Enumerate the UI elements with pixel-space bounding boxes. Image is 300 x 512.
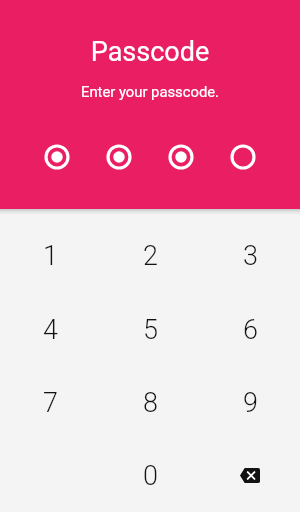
button[interactable]: 6 (200, 293, 300, 366)
staticText: 9 (243, 387, 258, 419)
staticText: 5 (143, 314, 158, 346)
button[interactable]: 5 (100, 293, 200, 366)
staticText: 0 (143, 460, 158, 492)
staticText: Enter your passcode. (0, 83, 300, 100)
staticText: Passcode (0, 36, 300, 68)
button[interactable]: 7 (0, 366, 100, 439)
staticText: 1 (43, 240, 58, 272)
staticText: 2 (143, 240, 158, 272)
staticText: 7 (43, 387, 58, 419)
button[interactable]: Delete (200, 439, 300, 512)
button[interactable]: 1 (0, 219, 100, 293)
button[interactable]: 2 (100, 219, 200, 293)
staticText: 8 (143, 387, 158, 419)
staticText: 6 (243, 314, 258, 346)
button[interactable]: 8 (100, 366, 200, 439)
button[interactable]: 4 (0, 293, 100, 366)
button[interactable]: 3 (200, 219, 300, 293)
staticText: 4 (43, 314, 58, 346)
staticText: 3 (243, 240, 258, 272)
button[interactable]: 0 (100, 439, 200, 512)
button[interactable]: 9 (200, 366, 300, 439)
